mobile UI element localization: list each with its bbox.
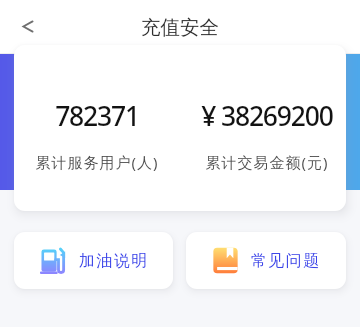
button[interactable]: 加油说明 bbox=[14, 232, 173, 289]
staticText: 累计交易金额(元) bbox=[205, 152, 329, 172]
button[interactable]: Back bbox=[9, 8, 47, 46]
staticText: 累计服务用户(人) bbox=[35, 152, 159, 172]
staticText: 782371 bbox=[55, 98, 139, 134]
staticText: 加油说明 bbox=[78, 251, 148, 271]
staticText: 常见问题 bbox=[250, 251, 320, 271]
staticText: ¥ 38269200 bbox=[201, 98, 333, 134]
staticText: 充值安全 bbox=[141, 15, 219, 40]
button[interactable]: 常见问题 bbox=[186, 232, 346, 289]
